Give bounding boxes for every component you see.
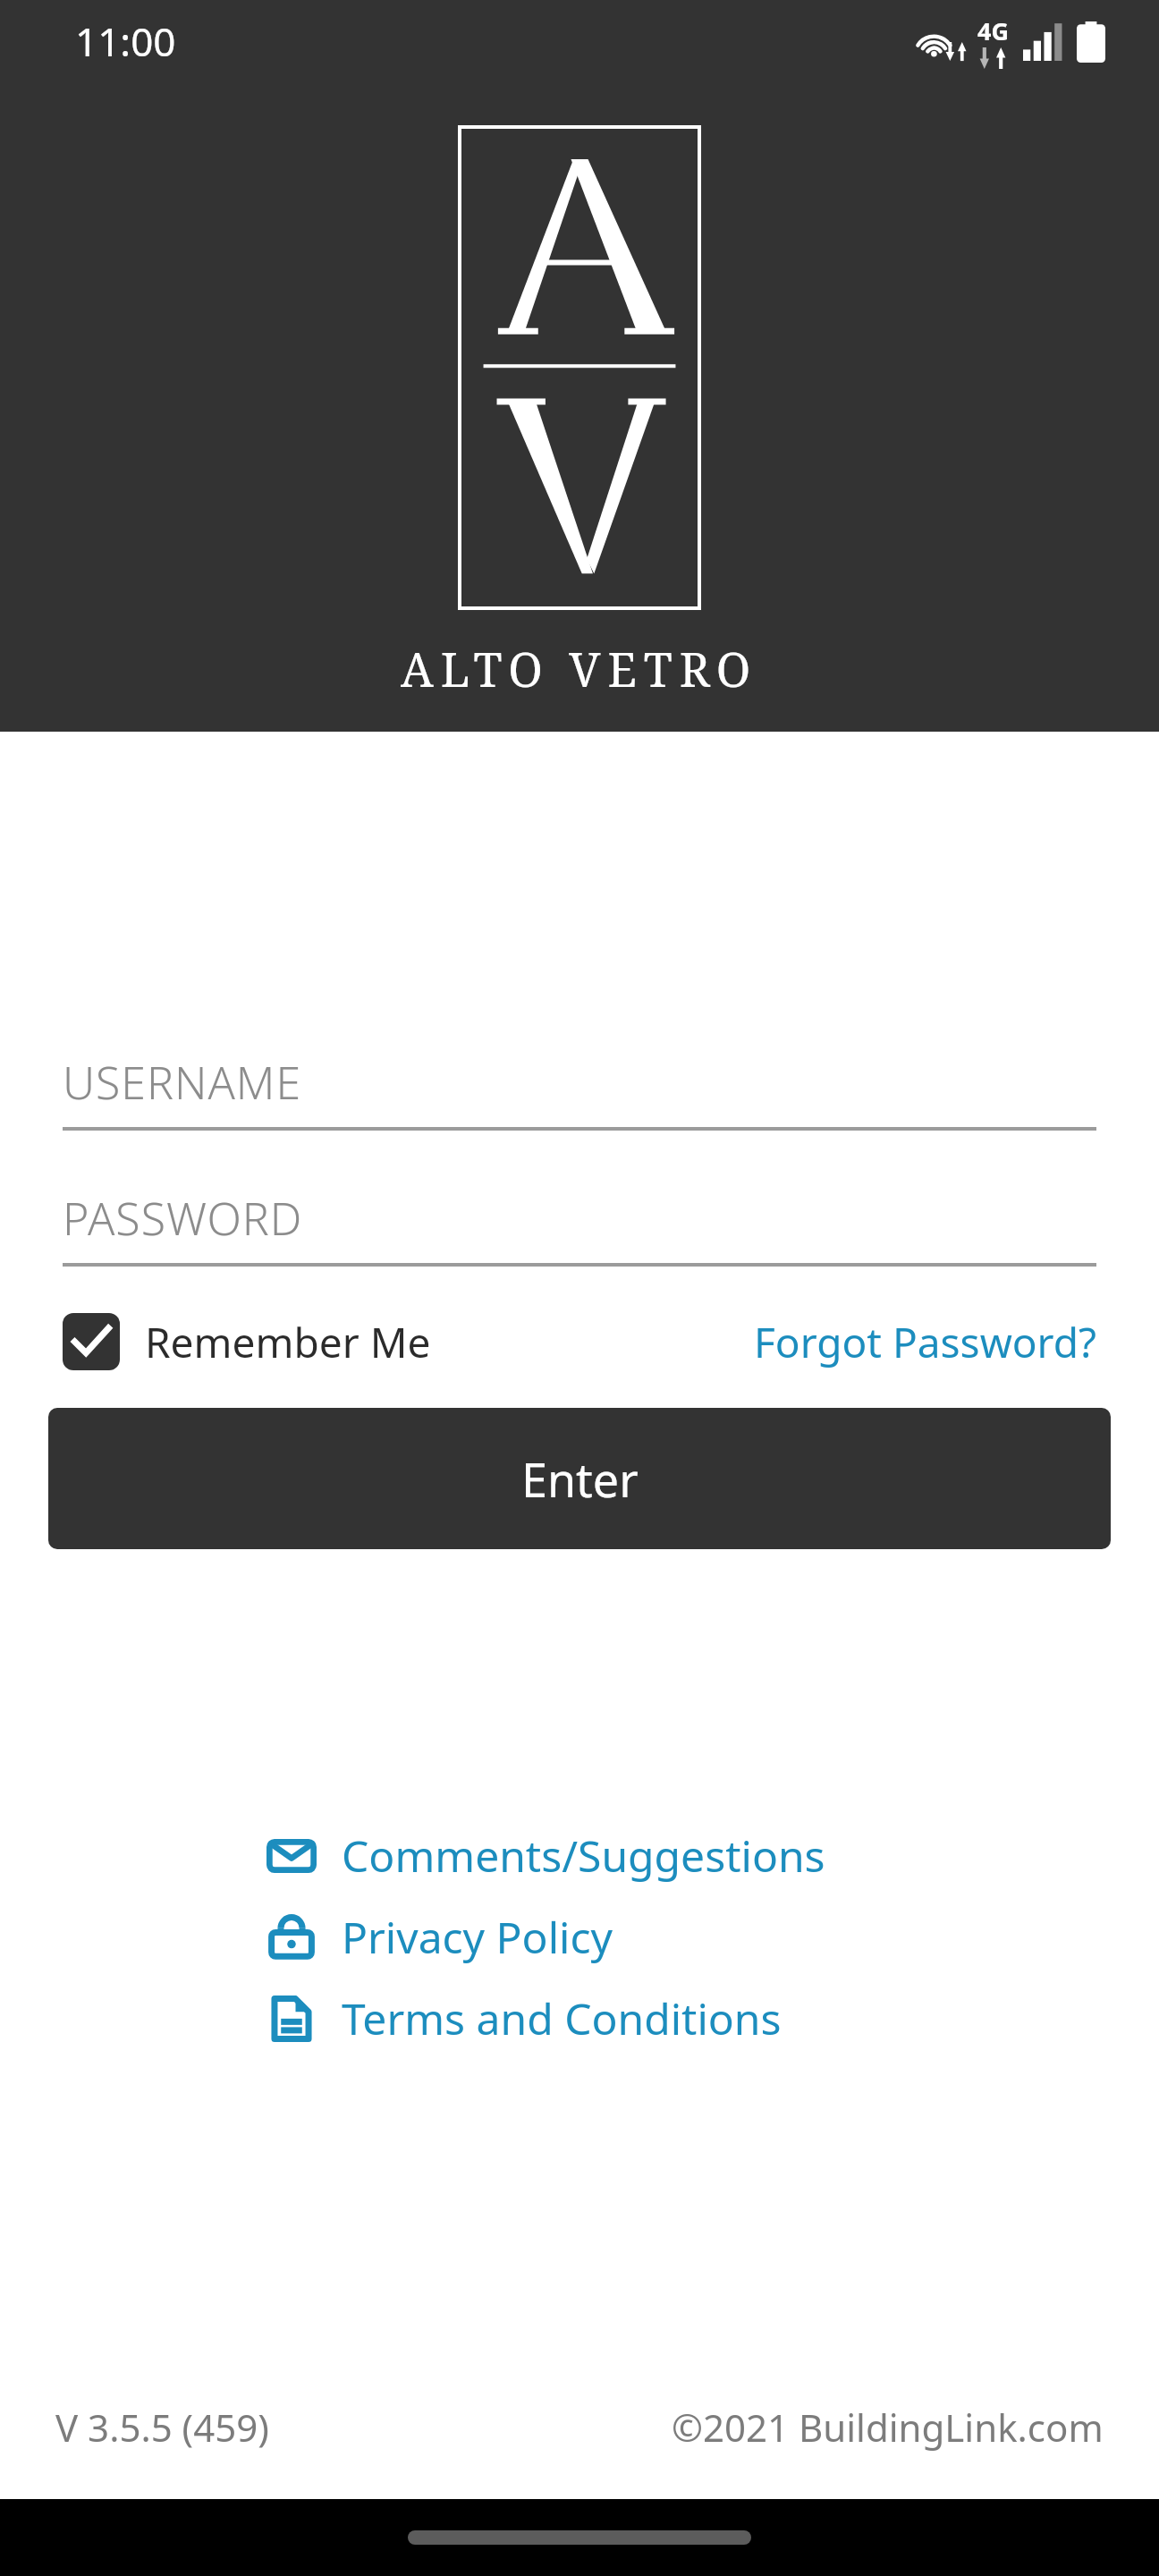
staticText: Privacy Policy bbox=[342, 1908, 613, 1966]
other: Comments and Suggestions bbox=[266, 1831, 317, 1881]
staticText: 11:00 bbox=[75, 14, 176, 68]
button[interactable]: USERNAME bbox=[63, 1052, 1096, 1131]
button[interactable]: Privacy Policy bbox=[266, 1908, 893, 1966]
button[interactable]: Enter bbox=[48, 1408, 1111, 1549]
staticText: ©2021 BuildingLink.com bbox=[672, 2402, 1104, 2453]
staticText: Forgot Password? bbox=[754, 1314, 1096, 1370]
button[interactable]: Forgot Password? bbox=[754, 1314, 1096, 1370]
staticText: PASSWORD bbox=[63, 1188, 303, 1249]
staticText: Enter bbox=[521, 1447, 639, 1511]
other: Terms and Conditions bbox=[266, 1994, 317, 2044]
staticText: Remember Me bbox=[145, 1314, 431, 1370]
button[interactable]: Remember Me bbox=[63, 1313, 431, 1370]
button[interactable]: Terms and Conditions bbox=[266, 1989, 893, 2047]
staticText: Terms and Conditions bbox=[342, 1989, 782, 2047]
staticText: USERNAME bbox=[63, 1052, 302, 1113]
staticText: 4G bbox=[977, 14, 1009, 47]
button[interactable]: Comments and Suggestions bbox=[266, 1826, 893, 1885]
other: Privacy Policy bbox=[266, 1912, 317, 1962]
staticText: V 3.5.5 (459) bbox=[55, 2402, 269, 2453]
button[interactable]: PASSWORD bbox=[63, 1188, 1096, 1267]
staticText: ALTO VETRO bbox=[401, 637, 758, 700]
staticText: Comments/Suggestions bbox=[342, 1826, 825, 1885]
